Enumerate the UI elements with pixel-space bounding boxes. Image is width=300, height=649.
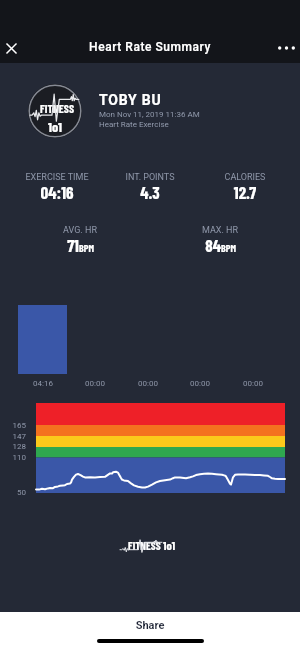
staticText: 00:00 (128, 379, 168, 388)
staticText: FITNESS (128, 539, 161, 552)
staticText: TOBY BU (99, 92, 162, 108)
staticText: Heart Rate Exercise (99, 120, 169, 129)
staticText: MAX. HR (170, 225, 270, 236)
staticText: AVG. HR (30, 225, 130, 236)
staticText: Heart Rate Summary (0, 40, 300, 54)
button[interactable]: Share (0, 612, 300, 638)
staticText: 00:00 (180, 379, 220, 388)
staticText: 4.3 (100, 182, 200, 202)
staticText: 00:00 (233, 379, 273, 388)
staticText: 00:00 (75, 379, 115, 388)
staticText: 12.7 (195, 182, 295, 202)
staticText: 84 (205, 235, 221, 255)
staticText: 165 (0, 421, 26, 430)
staticText: 147 (0, 432, 26, 441)
staticText: 50 (0, 488, 26, 497)
staticText: CALORIES (195, 172, 295, 183)
staticText: 04:16 (7, 182, 107, 202)
staticText: INT. POINTS (100, 172, 200, 183)
staticText: BPM (221, 242, 236, 254)
staticText: 71 (67, 235, 79, 255)
staticText: Share (0, 619, 300, 632)
staticText: BPM (79, 242, 94, 254)
staticText: 04:16 (23, 379, 63, 388)
staticText: 110 (0, 453, 26, 462)
staticText: 128 (0, 442, 26, 451)
staticText: 1o1 (163, 538, 176, 552)
staticText: 1o1 (28, 118, 82, 135)
button[interactable]: Close (0, 32, 27, 64)
staticText: EXERCISE TIME (7, 172, 107, 183)
staticText: Mon Nov 11, 2019 11:36 AM (99, 110, 200, 119)
button[interactable]: More options (270, 32, 300, 64)
staticText: FITNESS (40, 101, 75, 115)
